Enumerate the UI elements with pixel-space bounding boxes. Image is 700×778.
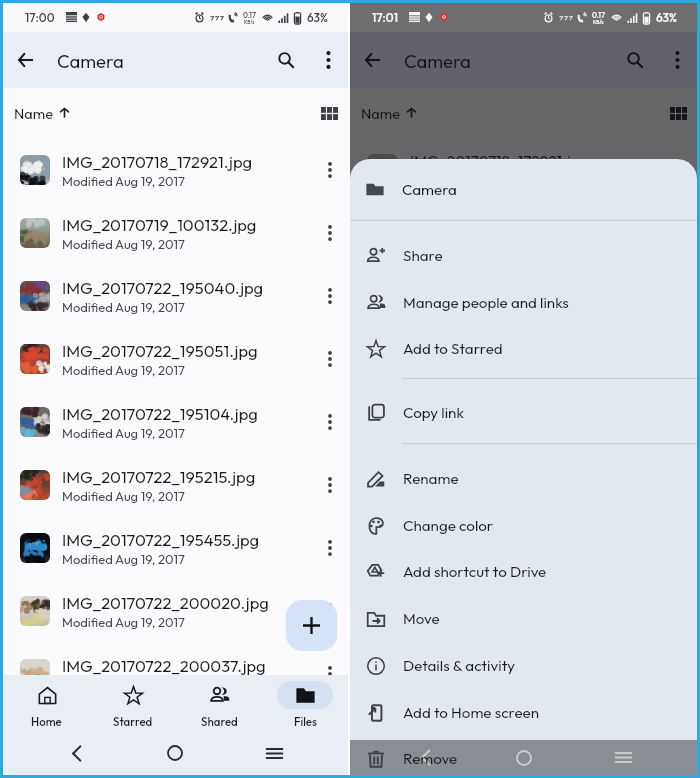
staticText: Files bbox=[294, 714, 317, 728]
button[interactable]: Back bbox=[3, 32, 47, 88]
button[interactable]: Change color bbox=[350, 502, 697, 549]
staticText: IMG_20170722_195040.jpg bbox=[62, 277, 264, 298]
staticText: Camera bbox=[404, 49, 471, 72]
button[interactable]: More options bbox=[312, 327, 348, 390]
staticText: Details & activity bbox=[403, 656, 516, 675]
staticText: Add to Starred bbox=[403, 339, 503, 358]
staticText: Name bbox=[14, 104, 53, 122]
button[interactable]: Share bbox=[350, 232, 697, 279]
staticText: Shared bbox=[201, 714, 238, 728]
button[interactable]: Starred bbox=[90, 675, 176, 731]
button[interactable]: Search bbox=[264, 32, 308, 88]
staticText: IMG_20170722_195104.jpg bbox=[62, 403, 258, 424]
button[interactable]: Back bbox=[405, 740, 445, 775]
staticText: Home bbox=[31, 714, 62, 728]
button[interactable]: Shared bbox=[176, 675, 262, 731]
button[interactable]: IMG_20170722_200037.jpg bbox=[3, 642, 348, 705]
button[interactable]: IMG_20170719_100132.jpg bbox=[3, 201, 348, 264]
button[interactable]: Copy link bbox=[350, 389, 697, 436]
button[interactable]: Home bbox=[155, 733, 195, 773]
staticText: Modified Aug 19, 2017 bbox=[62, 677, 185, 693]
staticText: Starred bbox=[113, 714, 153, 728]
button[interactable]: Files bbox=[262, 675, 348, 731]
button[interactable]: More options bbox=[312, 642, 348, 705]
staticText: Rename bbox=[403, 469, 459, 488]
button[interactable]: Manage people and links bbox=[350, 279, 697, 326]
button[interactable]: More options bbox=[312, 138, 348, 201]
staticText: Modified Aug 19, 2017 bbox=[62, 488, 185, 504]
staticText: Modified Aug 19, 2017 bbox=[62, 362, 185, 378]
staticText: Camera bbox=[402, 180, 457, 199]
staticText: 17:01 bbox=[372, 10, 398, 25]
staticText: IMG_20170719_100132.jpg bbox=[62, 214, 257, 235]
staticText: Share bbox=[403, 246, 443, 265]
button[interactable]: Home bbox=[504, 740, 544, 775]
staticText: Modified Aug 19, 2017 bbox=[62, 425, 185, 441]
button[interactable]: Rename bbox=[350, 455, 697, 502]
staticText: Change color bbox=[403, 516, 494, 535]
staticText: Remove bbox=[403, 749, 458, 768]
staticText: KB/s bbox=[244, 19, 255, 25]
button[interactable]: Back bbox=[350, 32, 394, 88]
staticText: Add shortcut to Drive bbox=[403, 562, 547, 581]
staticText: 63% bbox=[307, 10, 328, 25]
staticText: IMG_20170718_172921.jpg bbox=[62, 151, 253, 172]
staticText: Modified Aug 19, 2017 bbox=[410, 172, 529, 188]
button[interactable]: IMG_20170722_195215.jpg bbox=[3, 453, 348, 516]
staticText: IMG_20170722_195215.jpg bbox=[62, 466, 256, 487]
button[interactable]: Camera bbox=[350, 159, 697, 220]
staticText: IMG_20170722_200037.jpg bbox=[62, 655, 266, 676]
staticText: KB/s bbox=[593, 19, 604, 25]
staticText: Modified Aug 19, 2017 bbox=[62, 299, 185, 315]
button[interactable]: Home bbox=[3, 675, 90, 731]
button[interactable]: Add to Home screen bbox=[350, 689, 697, 736]
button[interactable]: Grid view bbox=[310, 88, 348, 138]
staticText: 17:00 bbox=[25, 10, 55, 25]
button[interactable]: More options bbox=[308, 32, 348, 88]
button[interactable]: Recents bbox=[603, 740, 643, 775]
button[interactable]: IMG_20170722_200020.jpg bbox=[3, 579, 348, 642]
button[interactable]: IMG_20170722_195104.jpg bbox=[3, 390, 348, 453]
button[interactable]: IMG_20170722_195040.jpg bbox=[3, 264, 348, 327]
button[interactable]: Remove bbox=[350, 735, 697, 778]
staticText: Modified Aug 19, 2017 bbox=[62, 551, 185, 567]
staticText: Manage people and links bbox=[403, 293, 569, 312]
button[interactable]: IMG_20170722_195051.jpg bbox=[3, 327, 348, 390]
button[interactable]: Add shortcut to Drive bbox=[350, 548, 697, 595]
button[interactable]: Search bbox=[613, 32, 657, 88]
staticText: Name bbox=[361, 104, 400, 122]
button[interactable]: More options bbox=[312, 201, 348, 264]
button[interactable]: Name bbox=[361, 104, 416, 122]
staticText: IMG_20170722_195455.jpg bbox=[62, 529, 260, 550]
staticText: 63% bbox=[656, 10, 677, 25]
staticText: Modified Aug 19, 2017 bbox=[62, 236, 185, 252]
button[interactable]: IMG_20170722_195455.jpg bbox=[3, 516, 348, 579]
staticText: Modified Aug 19, 2017 bbox=[62, 614, 185, 630]
staticText: 0.17 bbox=[243, 10, 256, 19]
staticText: Add to Home screen bbox=[403, 703, 540, 722]
button[interactable]: More options bbox=[657, 32, 697, 88]
button[interactable]: Add to Starred bbox=[350, 325, 697, 372]
button[interactable]: New bbox=[286, 600, 337, 651]
button[interactable]: IMG_20170718_172921.jpg bbox=[3, 138, 348, 201]
button[interactable]: Name bbox=[14, 104, 69, 122]
button[interactable]: Details & activity bbox=[350, 642, 697, 689]
button[interactable]: More options bbox=[312, 264, 348, 327]
staticText: Move bbox=[403, 609, 440, 628]
staticText: Copy link bbox=[403, 403, 464, 422]
button[interactable]: Recents bbox=[254, 733, 294, 773]
button[interactable]: Grid view bbox=[659, 88, 697, 138]
button[interactable]: Move bbox=[350, 595, 697, 642]
staticText: 0.17 bbox=[592, 10, 605, 19]
button[interactable]: More options bbox=[312, 516, 348, 579]
button[interactable]: Back bbox=[56, 733, 96, 773]
staticText: IMG_20170722_195051.jpg bbox=[62, 340, 258, 361]
button[interactable]: More options bbox=[312, 453, 348, 516]
staticText: IMG_20170722_200020.jpg bbox=[62, 592, 269, 613]
button[interactable]: More options bbox=[312, 579, 348, 642]
staticText: Modified Aug 19, 2017 bbox=[62, 173, 185, 189]
staticText: Camera bbox=[57, 49, 124, 72]
button[interactable]: More options bbox=[312, 390, 348, 453]
staticText: IMG_20170718_172921.jpg bbox=[410, 151, 589, 171]
